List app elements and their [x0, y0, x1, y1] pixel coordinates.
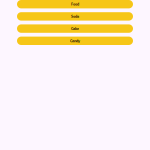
staticText: Food [71, 2, 79, 7]
staticText: Candy [70, 38, 80, 43]
button[interactable]: Food [17, 0, 133, 8]
staticText: Soda [71, 14, 79, 19]
button[interactable]: Soda [17, 12, 133, 21]
button[interactable]: Cake [17, 24, 133, 33]
button[interactable]: Candy [17, 37, 133, 45]
staticText: Cake [71, 26, 79, 31]
